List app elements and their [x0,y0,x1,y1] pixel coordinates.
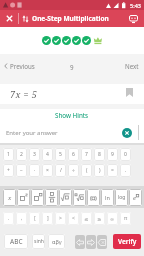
staticText: Verify [118,237,137,246]
staticText: 6 [72,151,75,158]
staticText: Previous [10,62,35,70]
staticText: 5:43 [130,2,141,9]
button[interactable]: ÷ [68,164,79,177]
staticText: 3 [33,151,36,158]
staticText: e [133,194,136,202]
button[interactable] [17,189,30,206]
staticText: 4 [46,151,49,158]
button[interactable]: ABC [4,234,28,249]
button[interactable] [45,189,58,206]
button[interactable] [86,235,96,249]
button[interactable]: 0 [120,148,131,161]
button[interactable] [52,36,61,45]
staticText: ABC [10,237,23,246]
button[interactable]: x [3,189,16,206]
button[interactable]: Next [125,62,139,70]
button[interactable]: ] [42,212,53,225]
button[interactable]: Verify [113,234,141,249]
button[interactable]: > [55,212,66,225]
button[interactable] [31,189,44,206]
staticText: ( [90,194,92,202]
button[interactable]: ( [81,164,92,177]
staticText: log [118,194,126,201]
staticText: ) [99,167,101,174]
button[interactable]: ( [87,189,100,206]
staticText: One-Step Multiplication [32,14,109,23]
button[interactable]: 2 [16,148,27,161]
button[interactable] [22,15,29,23]
button[interactable]: ≤ [81,212,92,225]
staticText: ) [95,194,97,202]
button[interactable]: [ [29,212,40,225]
button[interactable]: 9 [107,148,118,161]
button[interactable] [42,36,51,45]
button[interactable] [6,15,13,22]
button[interactable]: e [129,189,142,206]
button[interactable]: αβγ [48,234,65,249]
staticText: ] [47,215,49,222]
button[interactable]: π [120,212,131,225]
button[interactable]: . [120,164,131,177]
staticText: 1 [7,151,10,158]
staticText: ≤ [84,216,89,222]
staticText: αβγ [52,238,62,245]
button[interactable] [72,36,81,45]
button[interactable]: Enter your answer [0,122,144,143]
button[interactable]: · [29,164,40,177]
button[interactable]: 7 [81,148,92,161]
staticText: < [72,215,75,222]
button[interactable] [73,189,86,206]
button[interactable]: = [107,164,118,177]
staticText: 9 [111,151,114,158]
button[interactable]: − [16,164,27,177]
button[interactable]: . [3,212,14,225]
staticText: > [59,215,62,222]
button[interactable]: 4 [42,148,53,161]
button[interactable]: < [68,212,79,225]
button[interactable] [97,235,107,249]
staticText: Enter your answer [6,129,58,137]
button[interactable]: Show Hints [0,109,144,122]
button[interactable]: + [3,164,14,177]
button[interactable] [129,15,138,23]
button[interactable]: , [16,212,27,225]
button[interactable]: / [55,164,66,177]
button[interactable] [75,235,85,249]
button[interactable] [93,36,103,45]
button[interactable]: 6 [68,148,79,161]
button[interactable] [126,88,133,97]
staticText: ln [105,194,110,201]
staticText: ÷ [72,167,75,174]
button[interactable] [59,189,72,206]
button[interactable]: 8 [94,148,105,161]
staticText: Show Hints [55,111,89,120]
staticText: [ [34,215,36,222]
staticText: 7 [85,151,88,158]
staticText: + [7,167,10,174]
button[interactable]: ∞ [107,212,118,225]
button[interactable]: sinh [32,234,45,249]
staticText: π [124,215,128,222]
staticText: x [8,194,12,202]
staticText: = [111,167,114,174]
button[interactable]: ln [101,189,114,206]
staticText: ≥ [97,216,102,222]
button[interactable]: 5 [55,148,66,161]
button[interactable] [82,36,91,45]
button[interactable] [122,128,132,138]
staticText: − [20,167,23,174]
button[interactable]: Previous [4,62,35,70]
button[interactable] [62,36,71,45]
button[interactable]: × [42,164,53,177]
staticText: . [125,167,127,174]
button[interactable]: ) [94,164,105,177]
button[interactable]: 3 [29,148,40,161]
button[interactable]: 1 [3,148,14,161]
staticText: sinh [34,238,44,245]
button[interactable]: log [115,189,128,206]
staticText: 5 [59,151,62,158]
staticText: 0 [124,151,127,158]
staticText: 8 [98,151,101,158]
button[interactable]: ≥ [94,212,105,225]
staticText: × [46,167,49,174]
